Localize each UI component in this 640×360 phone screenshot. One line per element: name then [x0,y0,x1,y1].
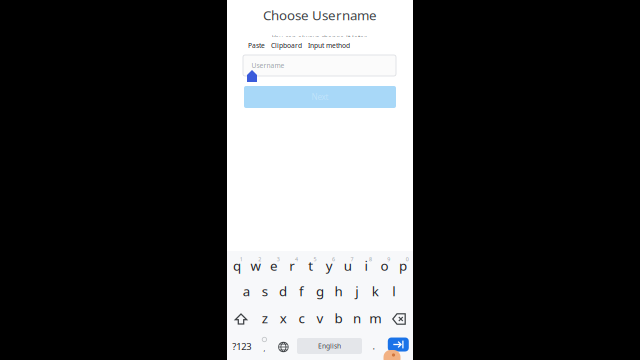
button[interactable]: j [348,278,366,304]
button[interactable]: o [375,252,394,278]
staticText: 0 [406,256,409,263]
staticText: You can always change it later. [272,34,368,42]
button[interactable]: t [302,252,320,278]
staticText: q [233,257,241,274]
button[interactable]: Emoji and comma [257,333,271,357]
button[interactable]: w [246,252,265,278]
button[interactable]: Paste [245,37,268,54]
staticText: b [334,309,342,327]
button[interactable]: x [274,305,292,331]
button[interactable]: a [237,278,255,304]
staticText: 5 [314,256,317,263]
staticText: s [262,282,268,300]
button[interactable]: e [265,252,283,278]
staticText: a [243,282,250,300]
staticText: w [250,257,260,274]
button[interactable]: d [274,278,292,304]
staticText: c [299,309,305,327]
button[interactable]: ?123 [228,334,256,358]
staticText: f [299,282,304,300]
button[interactable]: Shift [230,307,252,331]
staticText: Input method [308,41,350,50]
staticText: j [355,282,358,300]
button[interactable]: i [357,252,375,278]
staticText: y [326,257,333,274]
button[interactable]: q [228,252,246,278]
button[interactable]: Input method [305,37,353,54]
staticText: . [372,340,375,352]
button[interactable]: p [394,252,412,278]
button[interactable]: v [311,305,329,331]
button[interactable]: Next [388,337,409,351]
staticText: u [344,257,352,274]
staticText: x [280,309,287,327]
staticText: 2 [258,256,261,263]
staticText: z [262,309,268,327]
button[interactable]: Period [367,334,381,358]
staticText: n [353,309,361,327]
button[interactable]: n [348,305,366,331]
staticText: Next [311,92,328,102]
staticText: , [263,344,265,353]
staticText: l [392,282,395,300]
staticText: t [308,257,313,274]
staticText: d [279,282,287,300]
button[interactable]: Clipboard [268,37,305,54]
staticText: 6 [332,256,335,263]
staticText: 8 [369,256,372,263]
staticText: g [316,282,324,300]
button[interactable]: l [384,278,403,304]
staticText: m [369,309,381,327]
staticText: 4 [295,256,298,263]
staticText: English [318,342,341,350]
button[interactable]: c [292,305,311,331]
button[interactable]: English [297,338,362,354]
staticText: 1 [240,256,243,263]
button[interactable]: f [292,278,311,304]
button[interactable]: s [255,278,274,304]
button[interactable]: u [338,252,357,278]
staticText: Paste [248,41,265,50]
button[interactable]: h [329,278,348,304]
button[interactable]: g [311,278,329,304]
button[interactable]: Backspace [388,307,410,331]
staticText: 3 [277,256,280,263]
staticText: Clipboard [271,41,302,50]
staticText: k [372,282,379,300]
staticText: r [289,257,295,274]
staticText: p [399,257,407,274]
staticText: Username [251,61,284,70]
button[interactable]: z [255,305,274,331]
button[interactable]: m [366,305,384,331]
staticText: 7 [350,256,353,263]
staticText: i [365,257,368,274]
button[interactable]: Change language [274,335,292,359]
staticText: e [270,257,278,274]
button[interactable]: y [320,252,338,278]
button[interactable]: b [329,305,348,331]
staticText: h [334,282,342,300]
button[interactable]: r [283,252,301,278]
staticText: v [316,309,323,327]
staticText: o [380,257,388,274]
staticText: Choose Username [263,6,377,24]
staticText: 9 [387,256,390,263]
staticText: ?123 [232,340,251,353]
button[interactable]: k [366,278,384,304]
